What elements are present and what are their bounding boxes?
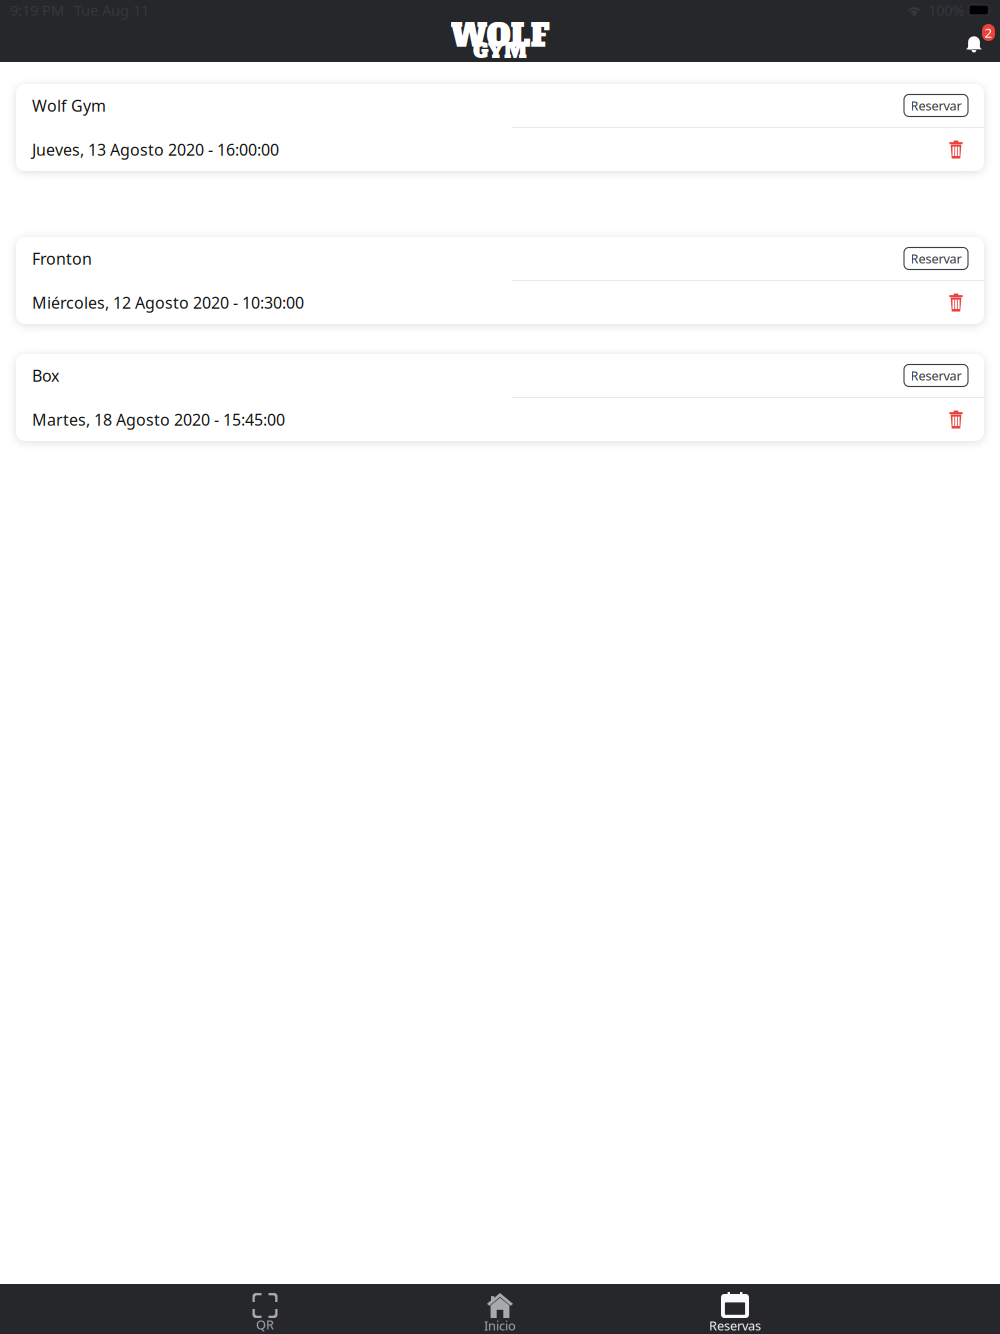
- button[interactable]: Inicio: [440, 1284, 560, 1334]
- staticText: 2: [984, 23, 992, 42]
- staticText: 100%: [928, 0, 964, 20]
- staticText: QR: [256, 1316, 274, 1333]
- staticText: 9:19 PM: [10, 0, 64, 20]
- staticText: Box: [32, 365, 59, 386]
- staticText: Miércoles, 12 Agosto 2020 - 10:30:00: [32, 292, 304, 313]
- button[interactable]: Notifications, 2 unread: [960, 22, 994, 60]
- staticText: Fronton: [32, 248, 92, 269]
- button[interactable]: Delete reservation: [939, 285, 973, 319]
- button[interactable]: Delete reservation: [939, 402, 973, 436]
- staticText: Reservar: [910, 367, 961, 384]
- staticText: Tue Aug 11: [74, 0, 149, 20]
- staticText: Reservar: [910, 250, 961, 267]
- staticText: Martes, 18 Agosto 2020 - 15:45:00: [32, 409, 285, 430]
- button[interactable]: Reservas: [675, 1284, 795, 1334]
- button[interactable]: Reservar: [904, 247, 968, 269]
- button[interactable]: Reservar: [904, 94, 968, 116]
- staticText: Wolf Gym: [32, 95, 106, 116]
- staticText: Reservas: [709, 1317, 761, 1334]
- staticText: Jueves, 13 Agosto 2020 - 16:00:00: [32, 139, 279, 160]
- staticText: WOLF: [450, 15, 549, 57]
- button[interactable]: Delete reservation: [939, 132, 973, 166]
- staticText: Reservar: [910, 97, 961, 114]
- button[interactable]: QR: [205, 1284, 325, 1334]
- staticText: GYM: [473, 37, 527, 65]
- button[interactable]: Reservar: [904, 364, 968, 386]
- staticText: Inicio: [484, 1317, 516, 1334]
